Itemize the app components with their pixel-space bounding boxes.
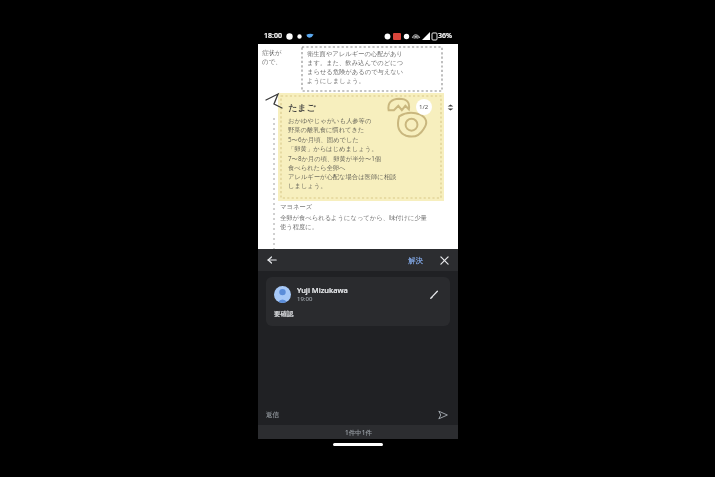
staticText: アレルギーが心配な場合は医師に相談 [288,173,397,181]
staticText: 18:00 [264,31,282,41]
staticText: しましょう。 [288,182,327,190]
staticText: 5〜6か月頃、固めでした [288,135,359,144]
staticText: まらせる危険があるので与えない [307,68,404,76]
staticText: 要確認 [274,310,294,318]
button[interactable]: Yuji Mizukawa [266,277,450,326]
button[interactable]: Page 1 of 2 [416,99,432,115]
staticText: 1/2 [419,103,429,111]
staticText: 野菜の離乳食に慣れてきた [288,126,365,134]
button[interactable]: Back [264,252,280,268]
staticText: 7〜8か月の頃、卵黄が半分〜1個 [288,154,382,163]
button[interactable]: 解決 [405,254,426,267]
staticText: マヨネーズ [280,203,313,211]
staticText: Yuji Mizukawa [297,285,348,295]
staticText: 症状が [262,49,282,57]
staticText: ようにしましょう。 [307,77,365,85]
button[interactable]: Edit comment [426,286,442,302]
staticText: たまご [288,102,316,113]
staticText: ます。また、飲み込んでのどにつ [307,59,404,67]
staticText: 「卵黄」からはじめましょう。 [288,145,378,153]
button[interactable]: Send [436,408,450,422]
staticText: 返信 [266,411,279,419]
button[interactable]: Scroll pages [445,97,456,117]
staticText: 36% [438,31,452,41]
staticText: 使う程度に。 [280,223,319,231]
staticText: 食べられたら全卵へ [288,164,346,172]
staticText: おかゆやじゃがいも人参等の [288,117,372,125]
staticText: 19:00 [297,295,313,303]
staticText: 衛生面やアレルギーの心配があり [307,50,403,58]
staticText: 1件中1件 [345,428,372,437]
button[interactable]: 返信 [258,405,458,425]
staticText: ので、 [262,58,282,66]
button[interactable]: Close [436,252,452,268]
staticText: 解決 [408,256,423,265]
staticText: 全卵が食べられるようになってから、味付けに少量 [280,214,428,222]
